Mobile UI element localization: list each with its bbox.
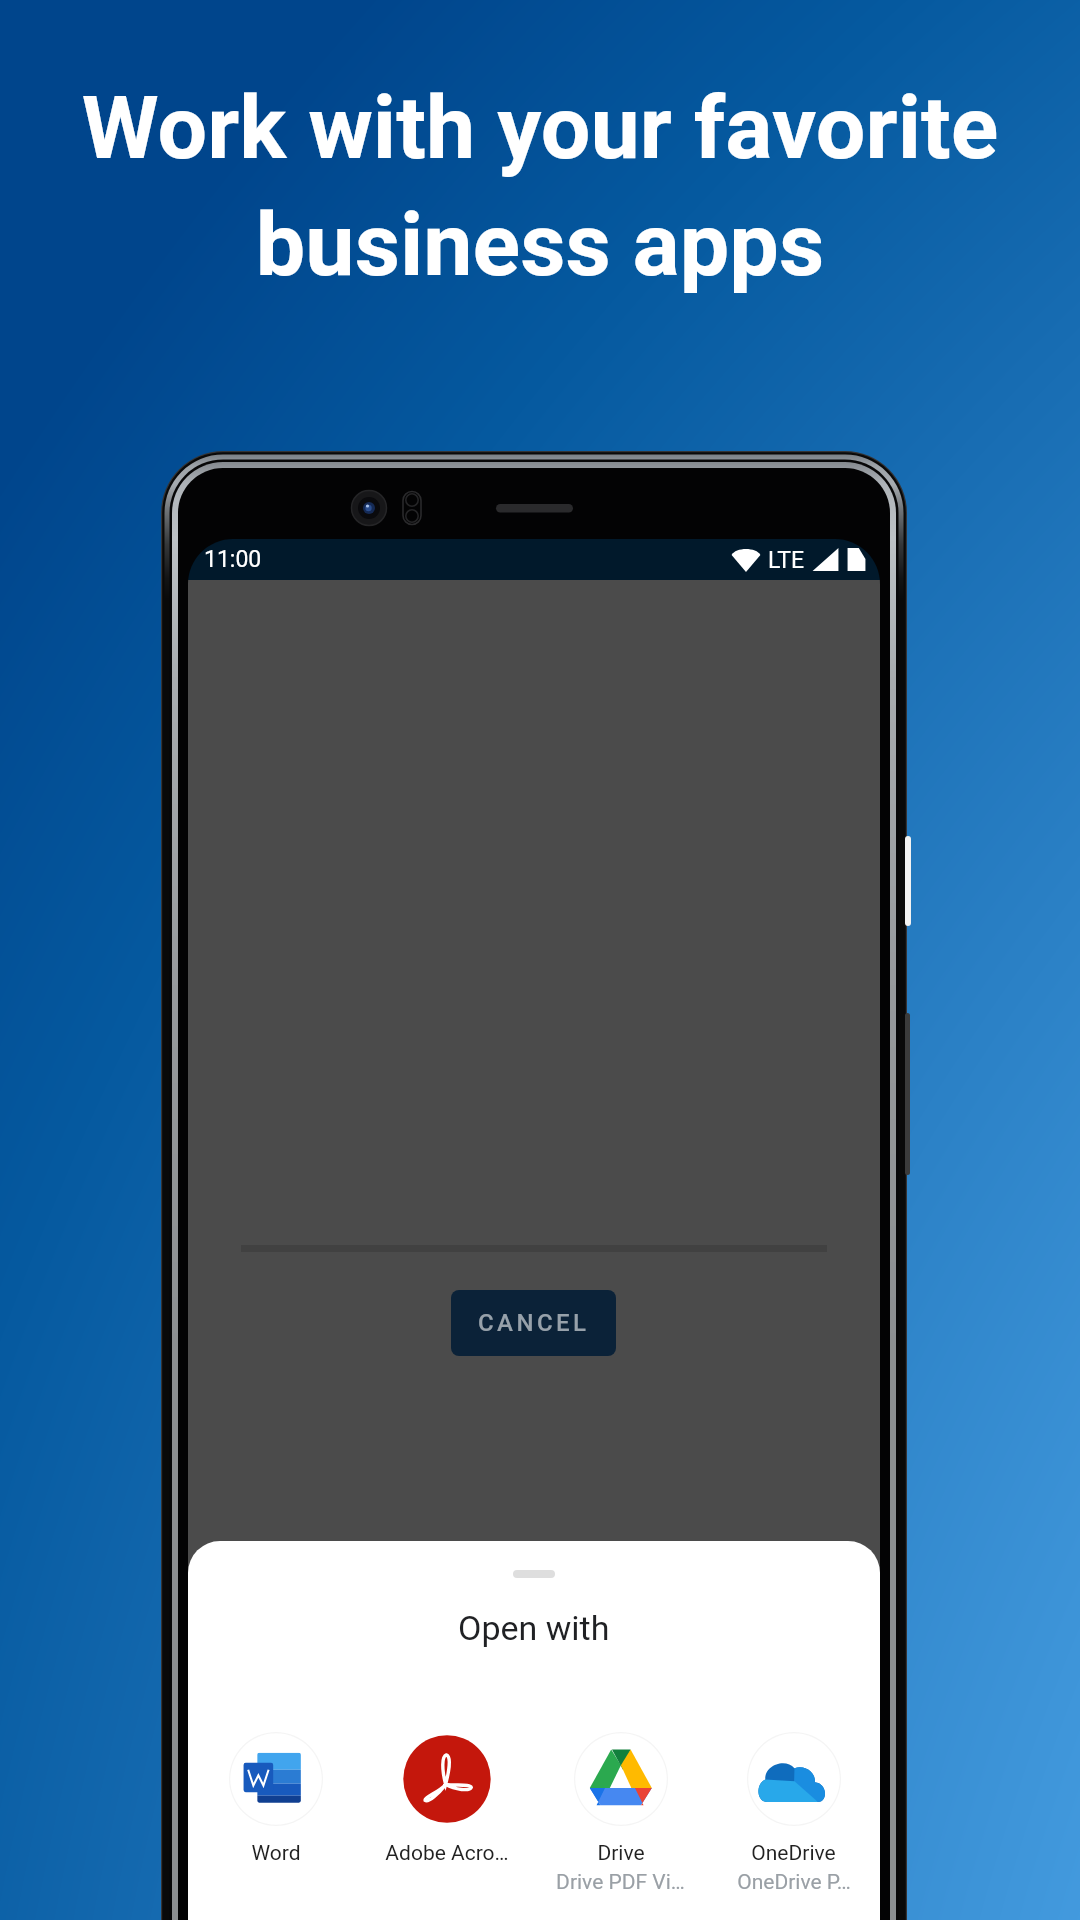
staticText: OneDrive — [751, 1841, 836, 1866]
staticText: Work with your favorite business apps — [36, 76, 1044, 296]
staticText: 11:00 — [204, 546, 262, 573]
staticText: Word — [251, 1841, 301, 1866]
staticText: CANCEL — [478, 1309, 590, 1337]
button[interactable]: Word — [188, 1732, 363, 1920]
other: Adobe Acrobat — [400, 1732, 494, 1826]
button[interactable]: CANCEL — [451, 1290, 616, 1356]
staticText: LTE — [768, 547, 805, 574]
staticText: Open with — [458, 1608, 610, 1648]
other: Drive — [574, 1732, 668, 1826]
other: OneDrive — [747, 1732, 841, 1826]
other: Word — [229, 1732, 323, 1826]
button[interactable]: Drive — [533, 1732, 708, 1920]
staticText: Drive — [597, 1841, 645, 1866]
staticText: OneDrive P… — [737, 1870, 851, 1895]
staticText: Drive PDF Vi… — [556, 1870, 685, 1895]
button[interactable]: OneDrive — [706, 1732, 880, 1920]
staticText: Adobe Acro… — [385, 1841, 509, 1866]
button[interactable]: Adobe Acrobat — [359, 1732, 534, 1920]
